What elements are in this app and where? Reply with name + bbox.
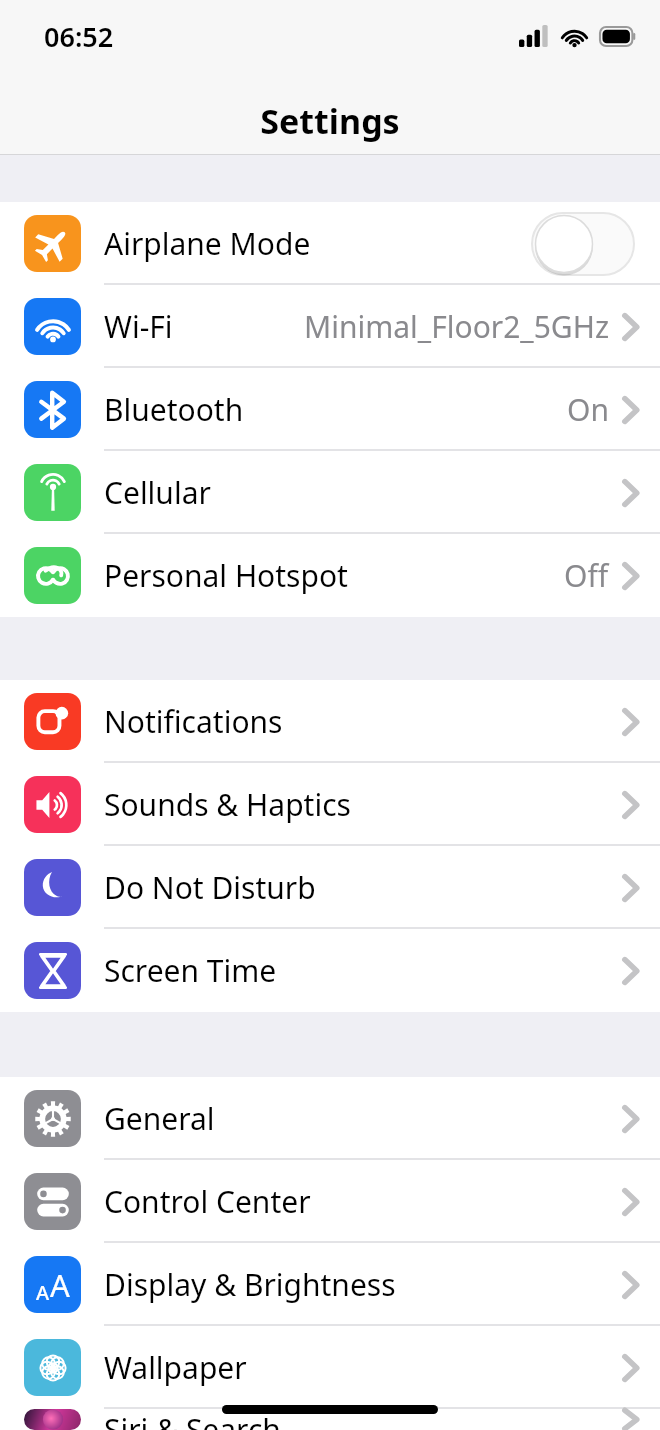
button[interactable]: Do Not Disturb [0, 846, 660, 929]
staticText: A [36, 1279, 50, 1306]
staticText: Control Center [104, 1181, 311, 1222]
staticText: Cellular [104, 472, 211, 513]
staticText: A [50, 1264, 70, 1306]
staticText: Do Not Disturb [104, 867, 316, 908]
staticText: Sounds & Haptics [104, 784, 351, 825]
button[interactable]: Screen Time [0, 929, 660, 1012]
staticText: On [567, 389, 609, 430]
button[interactable]: Airplane Mode [0, 202, 660, 285]
staticText: Screen Time [104, 950, 277, 991]
button[interactable]: Siri & Search [0, 1409, 660, 1430]
staticText: Airplane Mode [104, 223, 311, 264]
staticText: Siri & Search [104, 1409, 281, 1430]
staticText: Minimal_Floor2_5GHz [304, 306, 609, 347]
button[interactable]: General [0, 1077, 660, 1160]
button[interactable]: Control Center [0, 1160, 660, 1243]
button[interactable]: A [0, 1243, 660, 1326]
button[interactable]: Notifications [0, 680, 660, 763]
button[interactable]: Sounds & Haptics [0, 763, 660, 846]
staticText: Display & Brightness [104, 1264, 396, 1305]
staticText: Off [564, 555, 609, 596]
staticText: Notifications [104, 701, 283, 742]
staticText: Wallpaper [104, 1347, 247, 1388]
staticText: Settings [260, 98, 400, 144]
staticText: General [104, 1098, 215, 1139]
staticText: Bluetooth [104, 389, 244, 430]
button[interactable]: Wi-Fi [0, 285, 660, 368]
staticText: Wi-Fi [104, 306, 173, 347]
button[interactable]: Bluetooth [0, 368, 660, 451]
staticText: Personal Hotspot [104, 555, 348, 596]
button[interactable]: Personal Hotspot [0, 534, 660, 617]
button[interactable]: Airplane Mode toggle [532, 213, 634, 275]
button[interactable]: Cellular [0, 451, 660, 534]
staticText: 06:52 [44, 18, 114, 55]
button[interactable]: Wallpaper [0, 1326, 660, 1409]
